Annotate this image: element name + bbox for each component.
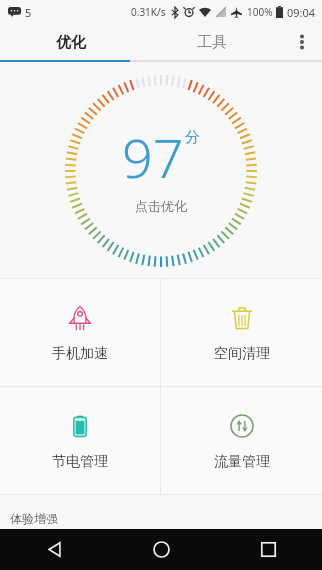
staticText: 点击优化: [135, 198, 187, 214]
staticText: 100%: [247, 5, 273, 19]
staticText: 流量管理: [214, 453, 270, 471]
staticText: 手机加速: [52, 345, 108, 363]
staticText: 97: [122, 120, 184, 194]
staticText: 空间清理: [214, 345, 270, 363]
button[interactable]: Back: [0, 529, 108, 570]
staticText: 优化: [56, 33, 86, 52]
staticText: 节电管理: [52, 453, 108, 471]
staticText: 5: [25, 5, 32, 20]
staticText: 工具: [197, 33, 227, 52]
button[interactable]: 节电管理: [0, 387, 160, 494]
button[interactable]: 空间清理: [161, 279, 322, 386]
button[interactable]: 97: [0, 64, 322, 278]
staticText: 分: [185, 128, 200, 147]
staticText: 体验增强: [10, 511, 58, 526]
button[interactable]: 工具: [141, 24, 282, 60]
button[interactable]: Recent apps: [215, 529, 322, 570]
button[interactable]: 优化: [0, 24, 141, 60]
button[interactable]: 手机加速: [0, 279, 160, 386]
staticText: 09:04: [287, 5, 316, 20]
button[interactable]: 流量管理: [161, 387, 322, 494]
button[interactable]: Home: [108, 529, 215, 570]
button[interactable]: More options: [282, 24, 322, 60]
staticText: 0.31K/s: [131, 5, 166, 19]
button[interactable]: 体验增强: [0, 507, 322, 529]
